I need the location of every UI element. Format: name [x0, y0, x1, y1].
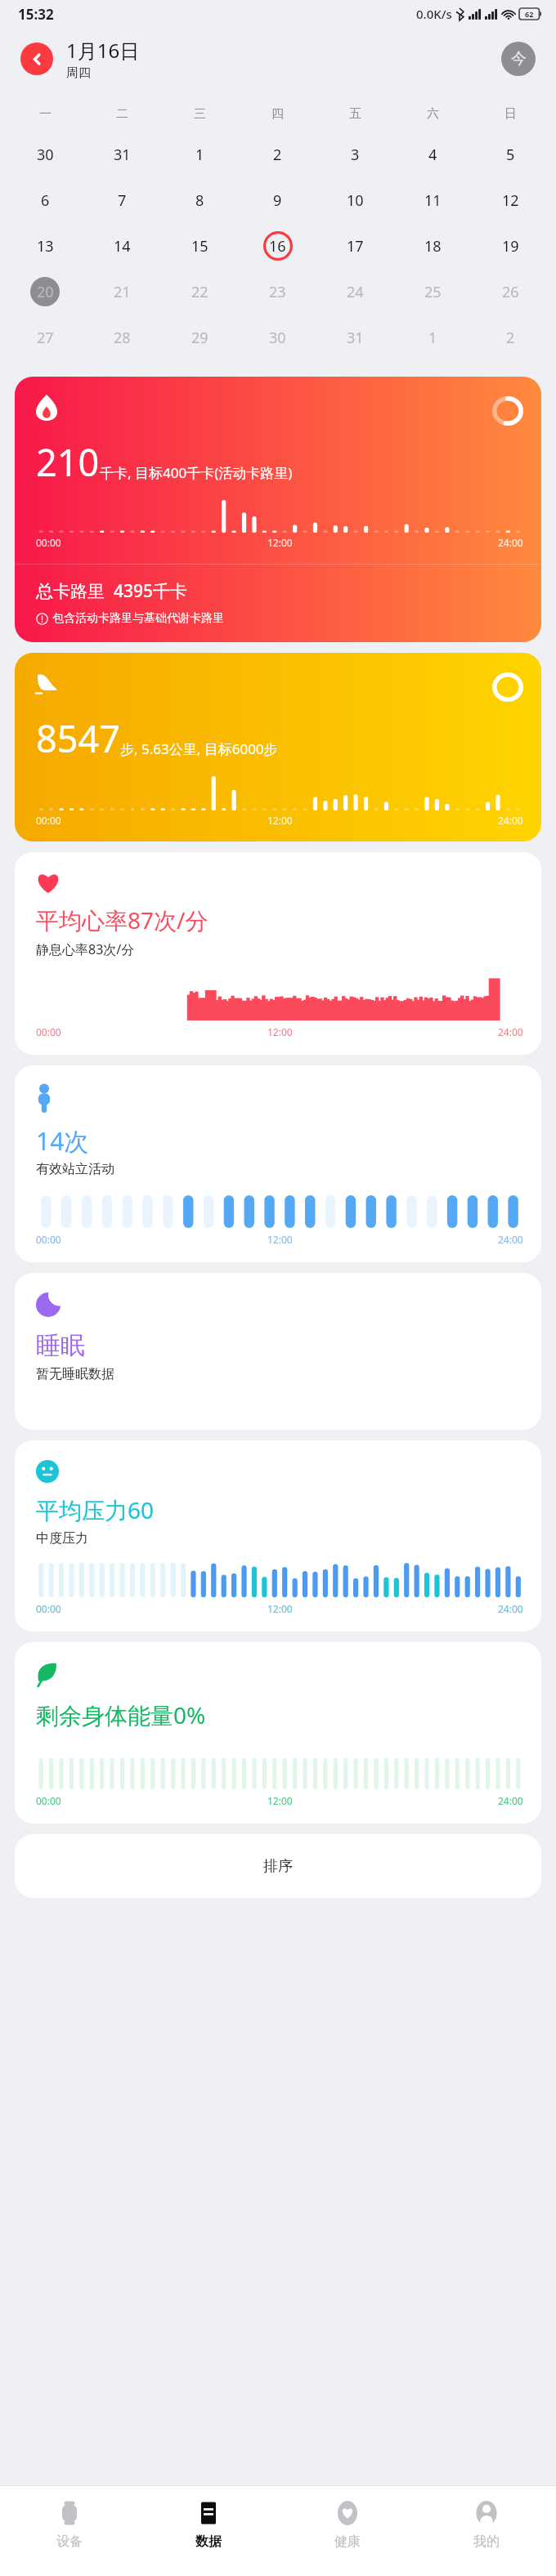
button[interactable]: 8547	[15, 653, 541, 842]
button[interactable]: 26	[472, 277, 549, 306]
staticText: 8547	[36, 713, 120, 763]
staticText: 步, 5.63公里, 目标6000步	[120, 739, 278, 758]
staticText: 千卡, 目标400千卡(活动卡路里)	[100, 463, 293, 482]
staticText: 13	[37, 236, 54, 257]
button[interactable]: 2	[239, 140, 316, 169]
button[interactable]: 睡眠	[15, 1273, 541, 1430]
staticText: 剩余身体能量0%	[36, 1699, 206, 1730]
button[interactable]: 31	[316, 323, 394, 352]
button[interactable]: 27	[7, 323, 83, 352]
staticText: 有效站立活动	[36, 1161, 114, 1177]
staticText: 30	[37, 145, 54, 165]
staticText: 30	[269, 328, 286, 348]
button[interactable]: 17	[316, 231, 394, 261]
button[interactable]: 6	[7, 185, 83, 215]
staticText: 12:00	[267, 1025, 293, 1038]
staticText: 12:00	[267, 814, 293, 827]
button[interactable]: 数据	[139, 2486, 278, 2576]
button[interactable]: 3	[316, 140, 394, 169]
button[interactable]: 11	[394, 185, 472, 215]
button[interactable]: 7	[83, 185, 161, 215]
button[interactable]: 28	[83, 323, 161, 352]
staticText: 12	[502, 190, 519, 211]
staticText: 62	[525, 9, 534, 19]
staticText: 周四	[66, 65, 91, 81]
button[interactable]: 1	[394, 323, 472, 352]
button[interactable]: 14	[83, 231, 161, 261]
button[interactable]: 210	[15, 377, 541, 642]
staticText: 11	[424, 190, 442, 211]
button[interactable]: 15	[161, 231, 239, 261]
button[interactable]: 30	[7, 140, 83, 169]
staticText: 9	[273, 190, 282, 211]
staticText: 24:00	[498, 814, 523, 827]
button[interactable]: 24	[316, 277, 394, 306]
button[interactable]: 25	[394, 277, 472, 306]
staticText: 2	[506, 328, 515, 348]
button[interactable]: 29	[161, 323, 239, 352]
button[interactable]: 5	[472, 140, 549, 169]
button[interactable]: 平均压力60	[15, 1440, 541, 1632]
staticText: 24:00	[498, 1233, 523, 1246]
staticText: 今	[511, 49, 527, 69]
button[interactable]: 设备	[0, 2486, 139, 2576]
staticText: 总卡路里 4395千卡	[36, 579, 187, 603]
button[interactable]: 2	[472, 323, 549, 352]
staticText: 14次	[36, 1124, 89, 1158]
button[interactable]: 19	[472, 231, 549, 261]
button[interactable]: 平均心率87次/分	[15, 852, 541, 1055]
staticText: 日	[504, 106, 517, 122]
staticText: 四	[271, 106, 284, 122]
staticText: 31	[347, 328, 364, 348]
staticText: 29	[191, 328, 208, 348]
button[interactable]: Today	[501, 42, 536, 76]
staticText: 一	[39, 106, 52, 122]
staticText: 设备	[56, 2534, 83, 2550]
button[interactable]: Previous day	[20, 42, 53, 75]
button[interactable]: 10	[316, 185, 394, 215]
button[interactable]: 12	[472, 185, 549, 215]
button[interactable]: 剩余身体能量0%	[15, 1642, 541, 1824]
staticText: 2	[273, 145, 282, 165]
button[interactable]: 我的	[417, 2486, 556, 2576]
button[interactable]: 排序	[15, 1834, 541, 1898]
staticText: 12:00	[267, 536, 293, 549]
staticText: 7	[118, 190, 127, 211]
button[interactable]: 31	[83, 140, 161, 169]
button[interactable]: 18	[394, 231, 472, 261]
button[interactable]: 9	[239, 185, 316, 215]
button[interactable]: 4	[394, 140, 472, 169]
staticText: 16	[269, 236, 286, 257]
staticText: 5	[506, 145, 515, 165]
staticText: 二	[116, 106, 128, 122]
staticText: 28	[114, 328, 131, 348]
staticText: 00:00	[36, 1602, 61, 1615]
staticText: 六	[427, 106, 439, 122]
staticText: 4	[428, 145, 437, 165]
staticText: 00:00	[36, 536, 61, 549]
staticText: 24:00	[498, 1025, 523, 1038]
staticText: 1	[428, 328, 437, 348]
staticText: 8	[195, 190, 204, 211]
button[interactable]: 8	[161, 185, 239, 215]
button[interactable]: 13	[7, 231, 83, 261]
staticText: 暂无睡眠数据	[36, 1366, 114, 1382]
button[interactable]: 16	[239, 231, 316, 261]
staticText: 1月16日	[66, 37, 140, 64]
staticText: 00:00	[36, 814, 61, 827]
staticText: 静息心率83次/分	[36, 940, 135, 958]
staticText: 12:00	[267, 1794, 293, 1807]
staticText: 25	[424, 282, 442, 302]
staticText: 1	[195, 145, 204, 165]
button[interactable]: 21	[83, 277, 161, 306]
staticText: 19	[502, 236, 519, 257]
button[interactable]: 1	[161, 140, 239, 169]
button[interactable]: 14次	[15, 1065, 541, 1262]
button[interactable]: 20	[7, 277, 83, 306]
staticText: 15:32	[18, 5, 54, 24]
button[interactable]: 22	[161, 277, 239, 306]
staticText: 三	[194, 106, 206, 122]
button[interactable]: 健康	[278, 2486, 417, 2576]
button[interactable]: 23	[239, 277, 316, 306]
button[interactable]: 30	[239, 323, 316, 352]
